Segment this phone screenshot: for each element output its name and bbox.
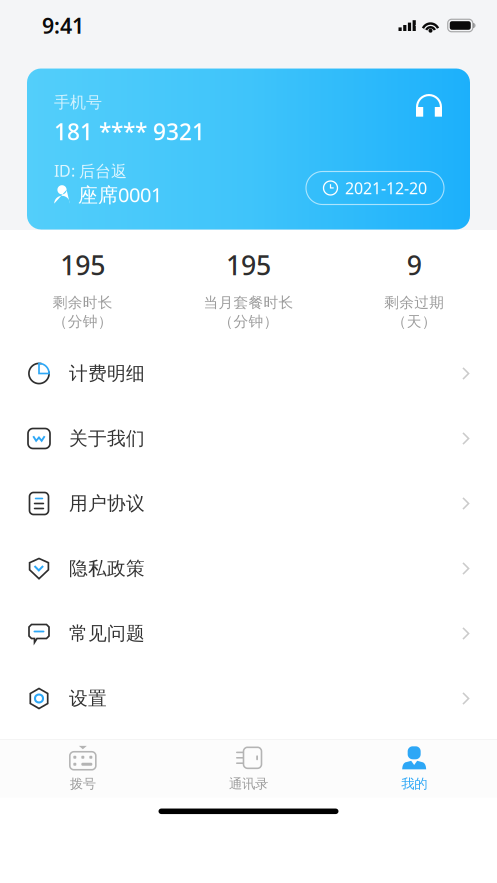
button[interactable]: 隐私政策 — [0, 536, 497, 601]
button[interactable]: 计费明细 — [0, 341, 497, 406]
staticText: 通讯录 — [229, 776, 268, 792]
staticText: 座席0001 — [78, 181, 162, 208]
staticText: 手机号 — [54, 93, 102, 112]
staticText: 当月套餐时长 — [203, 293, 293, 311]
staticText: 195 — [60, 247, 105, 283]
staticText: 常见问题 — [69, 622, 145, 645]
staticText: 用户协议 — [69, 492, 145, 515]
staticText: 181 **** 9321 — [54, 116, 205, 146]
staticText: 我的 — [401, 776, 427, 792]
staticText: 关于我们 — [69, 427, 145, 450]
button[interactable]: 用户协议 — [0, 471, 497, 536]
button[interactable]: 通讯录 — [166, 741, 331, 797]
staticText: 计费明细 — [69, 362, 145, 385]
staticText: （分钟） — [218, 312, 278, 330]
button[interactable]: 常见问题 — [0, 601, 497, 666]
button[interactable]: 客服 — [414, 90, 444, 118]
staticText: 195 — [226, 247, 271, 283]
staticText: （分钟） — [53, 312, 113, 330]
staticText: （天） — [392, 312, 437, 330]
button[interactable]: 设置 — [0, 666, 497, 731]
staticText: 剩余时长 — [53, 293, 113, 311]
staticText: 9:41 — [42, 11, 84, 40]
staticText: 隐私政策 — [69, 557, 145, 580]
staticText: ID: 后台返 — [54, 160, 127, 181]
button[interactable]: 拨号 — [0, 741, 166, 797]
staticText: 9 — [407, 247, 422, 283]
button[interactable]: 我的 — [331, 741, 497, 797]
staticText: 拨号 — [70, 776, 96, 792]
button[interactable]: 关于我们 — [0, 406, 497, 471]
staticText: 2021-12-20 — [345, 177, 427, 199]
staticText: 设置 — [69, 687, 107, 710]
staticText: 剩余过期 — [384, 293, 444, 311]
